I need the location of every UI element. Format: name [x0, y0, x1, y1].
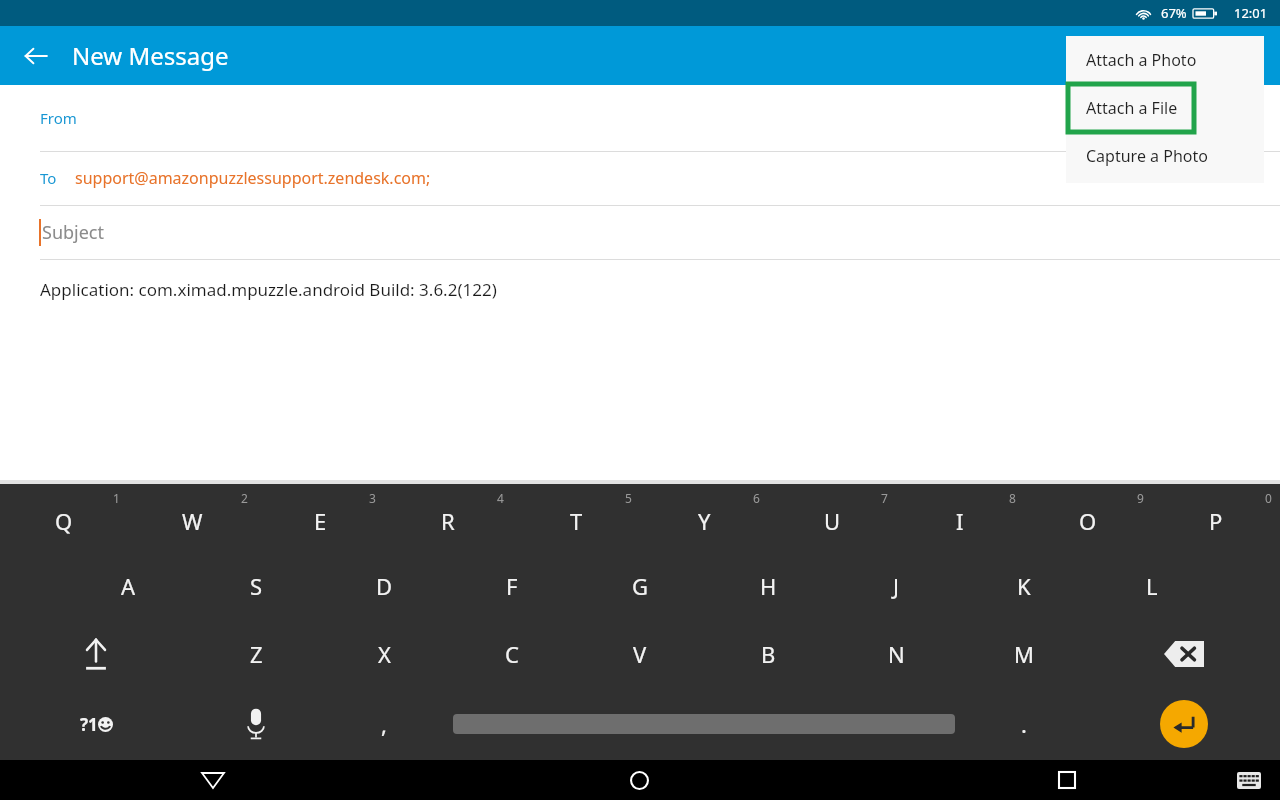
- staticText: ?1: [80, 713, 98, 736]
- staticText: S: [250, 571, 263, 601]
- button[interactable]: M: [960, 620, 1088, 688]
- button[interactable]: From: [0, 85, 1280, 151]
- staticText: 0: [1265, 490, 1272, 506]
- staticText: .: [1021, 709, 1027, 739]
- staticText: G: [632, 571, 649, 601]
- staticText: 9: [1137, 490, 1144, 506]
- button[interactable]: Switch keyboard: [1232, 763, 1266, 797]
- staticText: 6: [753, 490, 760, 506]
- staticText: 7: [881, 490, 888, 506]
- staticText: 5: [625, 490, 632, 506]
- staticText: To: [40, 168, 57, 188]
- staticText: B: [761, 639, 776, 669]
- staticText: Attach a File: [1086, 97, 1178, 119]
- button[interactable]: Enter: [1088, 688, 1280, 760]
- staticText: From: [40, 108, 77, 128]
- button[interactable]: Z: [192, 620, 320, 688]
- button[interactable]: J: [832, 552, 960, 620]
- button[interactable]: .: [960, 688, 1088, 760]
- staticText: W: [182, 506, 203, 536]
- button[interactable]: Capture a Photo: [1066, 132, 1264, 180]
- staticText: ;: [426, 167, 431, 189]
- button[interactable]: B: [704, 620, 832, 688]
- button[interactable]: 7: [768, 484, 896, 552]
- staticText: T: [570, 506, 583, 536]
- staticText: 1: [113, 490, 120, 506]
- button[interactable]: L: [1088, 552, 1216, 620]
- staticText: Capture a Photo: [1086, 145, 1208, 167]
- button[interactable]: 5: [512, 484, 640, 552]
- staticText: F: [506, 571, 518, 601]
- staticText: Application: com.ximad.mpuzzle.android B…: [40, 278, 497, 301]
- button[interactable]: 3: [256, 484, 384, 552]
- button[interactable]: Back: [14, 34, 58, 78]
- staticText: R: [441, 506, 455, 536]
- staticText: E: [314, 506, 327, 536]
- button[interactable]: To: [0, 151, 1280, 205]
- button[interactable]: Back: [0, 760, 426, 800]
- staticText: J: [893, 571, 900, 601]
- button[interactable]: K: [960, 552, 1088, 620]
- staticText: M: [1014, 639, 1034, 669]
- button[interactable]: 6: [640, 484, 768, 552]
- staticText: X: [378, 639, 391, 669]
- button[interactable]: 0: [1152, 484, 1280, 552]
- button[interactable]: Symbols: [0, 688, 192, 760]
- staticText: O: [1079, 506, 1097, 536]
- staticText: Attach a Photo: [1086, 49, 1197, 71]
- button[interactable]: Space: [448, 688, 960, 760]
- button[interactable]: 1: [0, 484, 128, 552]
- staticText: 67%: [1161, 4, 1187, 22]
- staticText: Q: [55, 506, 73, 536]
- button[interactable]: F: [448, 552, 576, 620]
- button[interactable]: 9: [1024, 484, 1152, 552]
- button[interactable]: ,: [320, 688, 448, 760]
- staticText: support@amazonpuzzlessupport.zendesk.com: [75, 167, 426, 189]
- button[interactable]: Home: [426, 760, 853, 800]
- staticText: K: [1017, 571, 1031, 601]
- button[interactable]: 8: [896, 484, 1024, 552]
- button[interactable]: C: [448, 620, 576, 688]
- staticText: V: [633, 639, 647, 669]
- staticText: ,: [381, 709, 387, 739]
- staticText: N: [888, 639, 905, 669]
- staticText: 8: [1009, 490, 1016, 506]
- button[interactable]: H: [704, 552, 832, 620]
- button[interactable]: V: [576, 620, 704, 688]
- staticText: C: [505, 639, 519, 669]
- button[interactable]: N: [832, 620, 960, 688]
- staticText: D: [376, 571, 393, 601]
- button[interactable]: Subject: [0, 205, 1280, 259]
- staticText: New Message: [72, 39, 229, 72]
- button[interactable]: Recents: [853, 760, 1280, 800]
- button[interactable]: G: [576, 552, 704, 620]
- button[interactable]: A: [64, 552, 192, 620]
- button[interactable]: Backspace: [1088, 620, 1280, 688]
- button[interactable]: S: [192, 552, 320, 620]
- staticText: P: [1209, 506, 1223, 536]
- button[interactable]: Voice input: [192, 688, 320, 760]
- staticText: Subject: [42, 220, 105, 245]
- button[interactable]: D: [320, 552, 448, 620]
- staticText: L: [1146, 571, 1158, 601]
- staticText: 4: [497, 490, 504, 506]
- staticText: I: [956, 506, 964, 536]
- staticText: Y: [698, 506, 711, 536]
- button[interactable]: Attach a File: [1066, 84, 1264, 132]
- staticText: H: [760, 571, 777, 601]
- staticText: 2: [241, 490, 248, 506]
- button[interactable]: X: [320, 620, 448, 688]
- staticText: U: [824, 506, 841, 536]
- button[interactable]: Attach a Photo: [1066, 36, 1264, 84]
- staticText: 3: [369, 490, 376, 506]
- staticText: Z: [250, 639, 263, 669]
- button[interactable]: 2: [128, 484, 256, 552]
- staticText: 12:01: [1234, 4, 1268, 22]
- button[interactable]: 4: [384, 484, 512, 552]
- staticText: A: [121, 571, 136, 601]
- button[interactable]: Shift: [0, 620, 192, 688]
